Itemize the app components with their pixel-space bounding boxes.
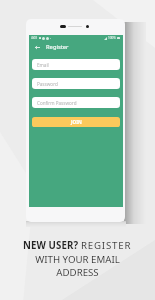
staticText: JOIN: [71, 119, 82, 125]
button[interactable]: Back: [34, 44, 41, 51]
staticText: 100%: [108, 36, 116, 40]
staticText: REGISTER: [81, 239, 132, 252]
staticText: NEW USER?: [23, 239, 81, 252]
staticText: ADDRESS: [56, 266, 99, 279]
staticText: WITH YOUR EMAIL: [35, 253, 120, 266]
button[interactable]: Password: [32, 78, 120, 89]
staticText: 4:03: [31, 36, 38, 40]
staticText: Confirm Password: [37, 100, 77, 106]
staticText: Email: [37, 62, 49, 68]
button[interactable]: JOIN: [32, 117, 120, 127]
button[interactable]: Confirm Password: [32, 97, 120, 108]
button[interactable]: Email: [32, 59, 120, 70]
staticText: Register: [46, 43, 69, 51]
staticText: Password: [37, 81, 58, 87]
